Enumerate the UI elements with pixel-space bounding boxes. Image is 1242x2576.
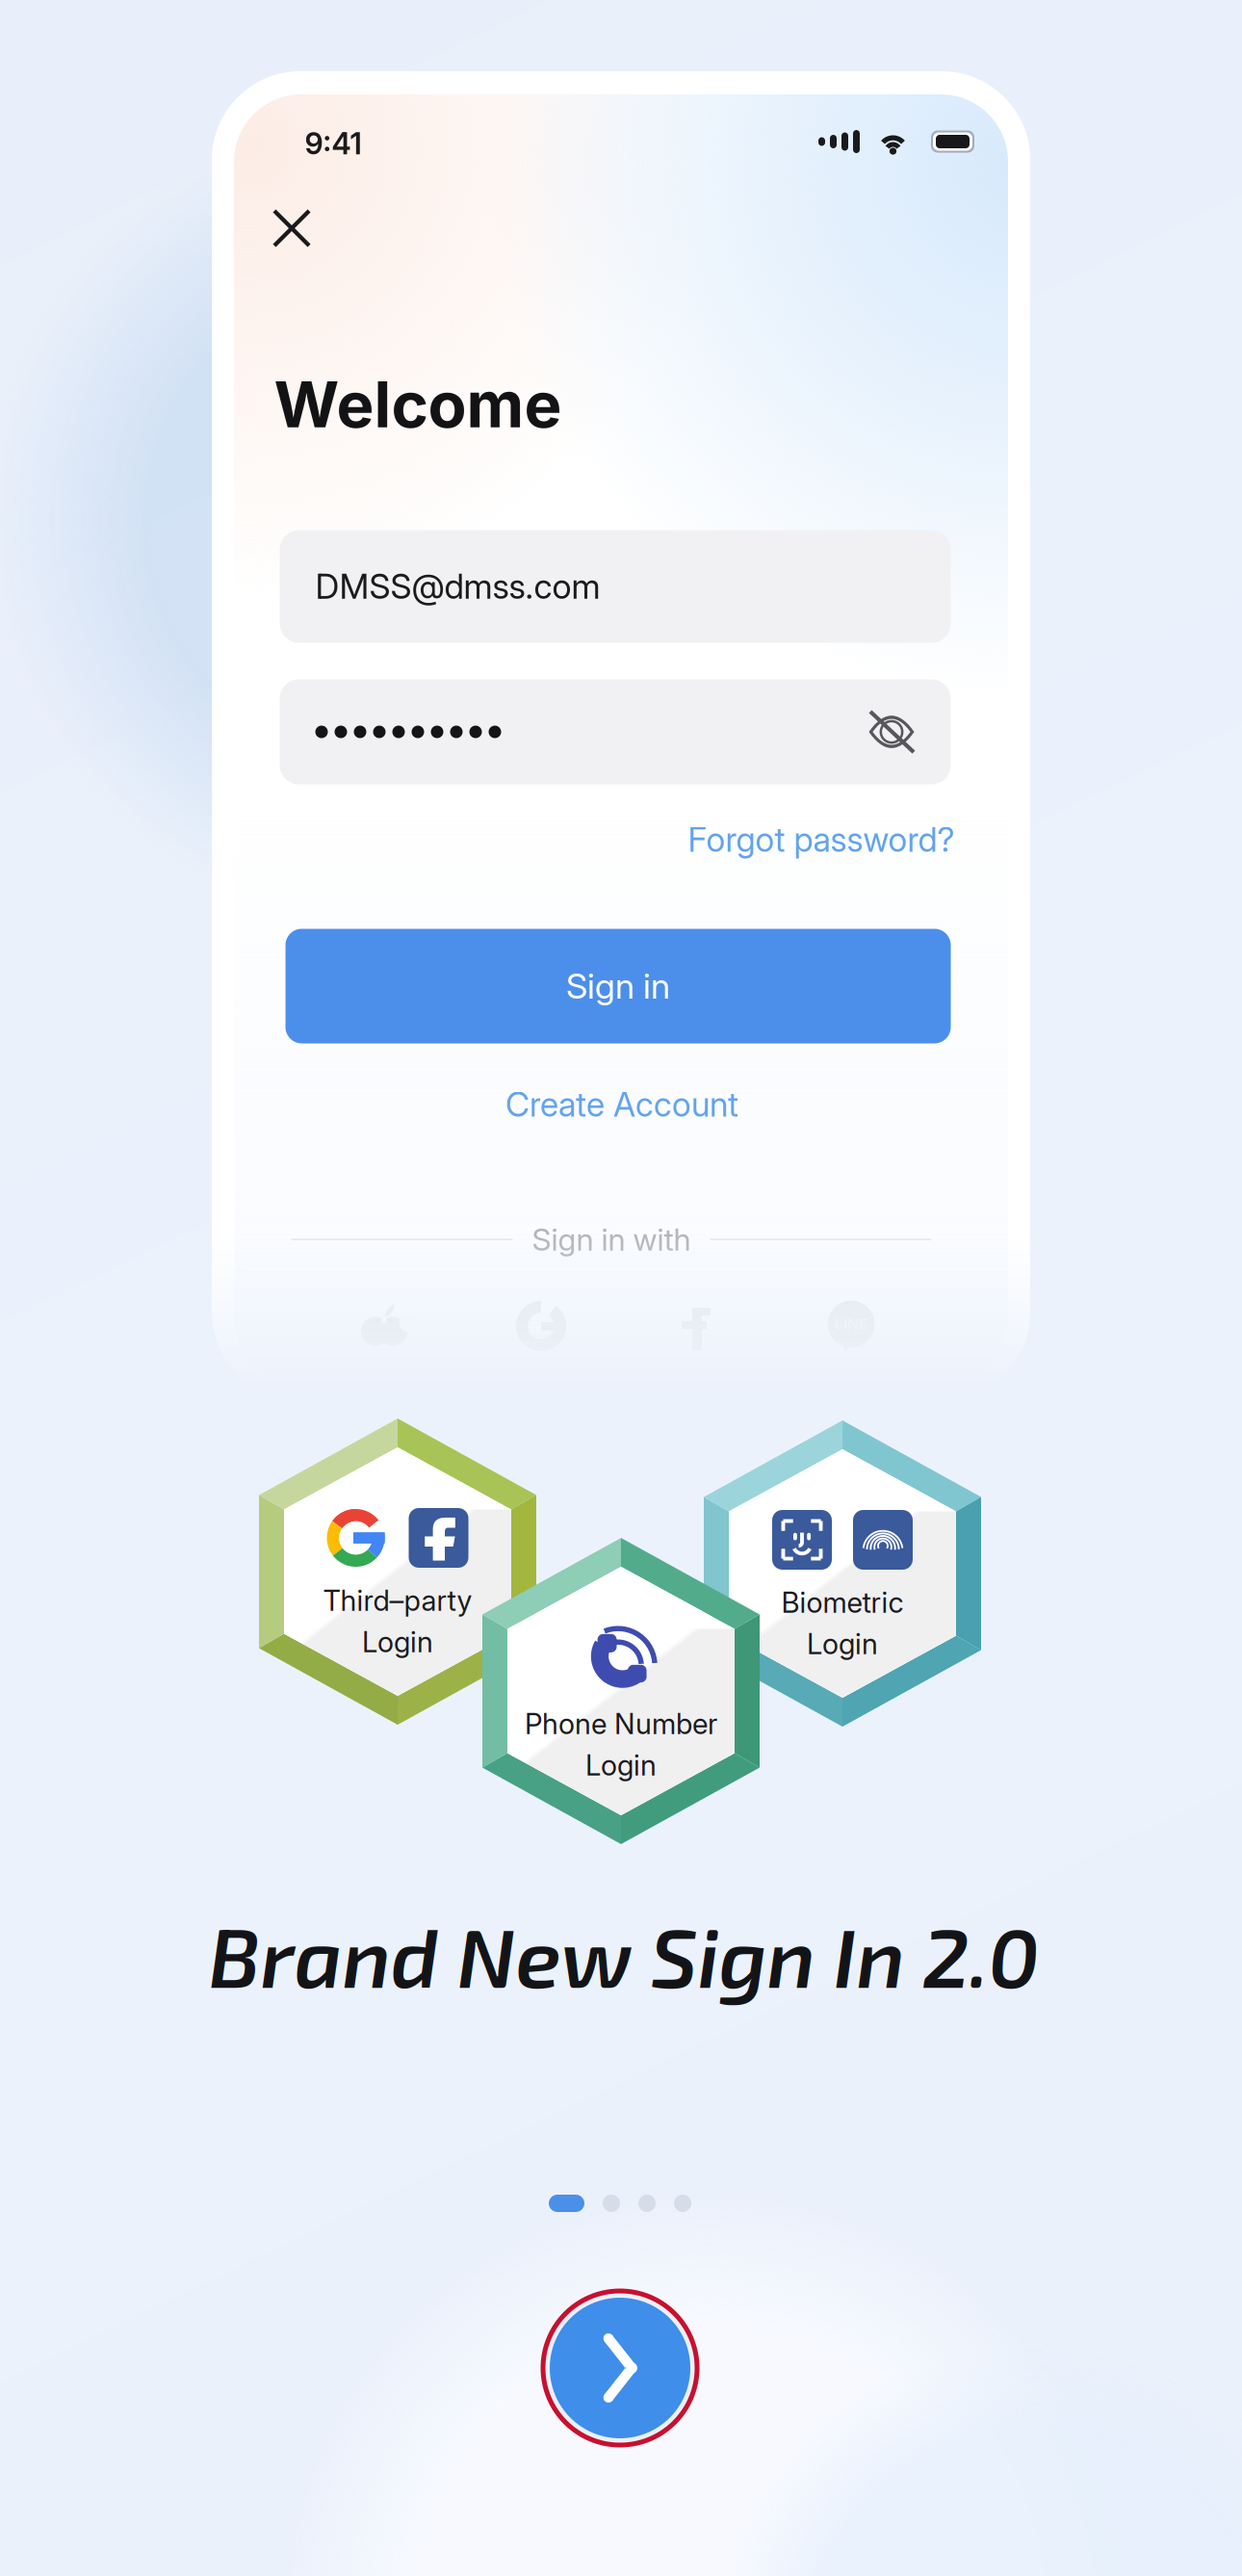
staticText: Login xyxy=(362,1625,433,1659)
button[interactable]: Close xyxy=(260,197,323,260)
staticText: Brand New Sign In 2.0 xyxy=(208,1906,1039,2004)
staticText: Create Account xyxy=(505,1084,738,1125)
staticText: Phone Number xyxy=(525,1707,717,1741)
staticText: Sign in with xyxy=(532,1221,691,1258)
staticText: Login xyxy=(807,1627,878,1661)
staticText: 9:41 xyxy=(305,126,362,161)
button[interactable]: Forgot password? xyxy=(682,810,960,869)
staticText: Sign in xyxy=(566,965,670,1007)
staticText: Forgot password? xyxy=(688,820,955,860)
button[interactable]: Next xyxy=(539,2287,701,2449)
staticText: Third–party xyxy=(323,1583,472,1618)
staticText: Login xyxy=(585,1748,657,1782)
button[interactable]: Sign in xyxy=(285,929,951,1043)
staticText: Welcome xyxy=(274,366,562,442)
button[interactable]: Create Account xyxy=(289,1063,955,1146)
staticText: Biometric xyxy=(781,1585,904,1620)
staticText: DMSS@dmss.com xyxy=(315,566,600,607)
